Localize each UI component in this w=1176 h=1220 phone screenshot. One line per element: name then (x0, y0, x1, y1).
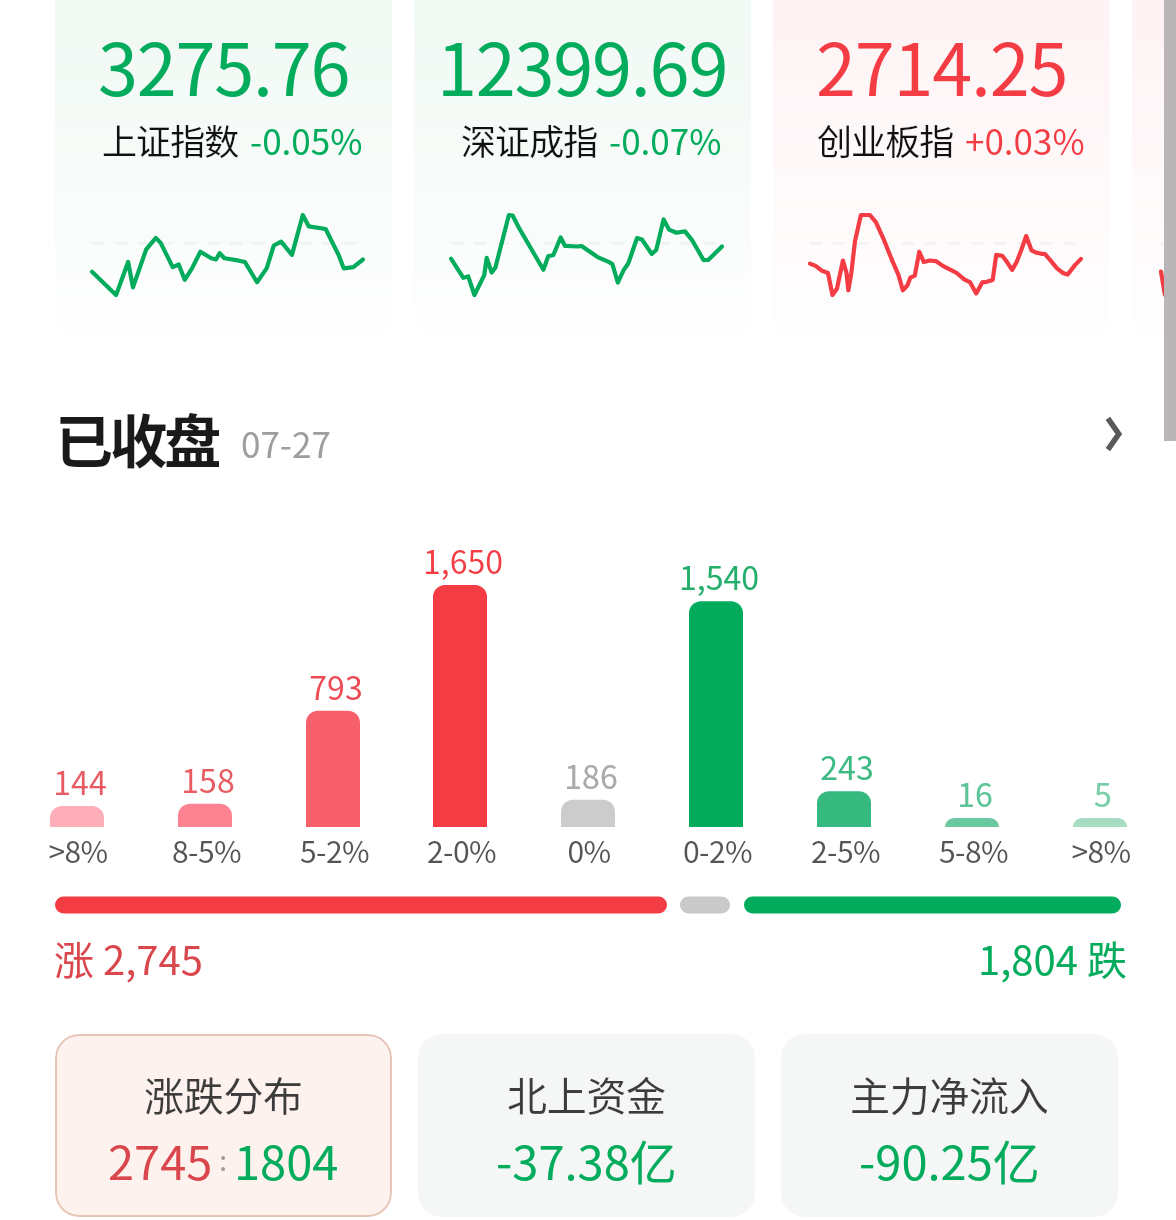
button[interactable]: 北上资金 (418, 1034, 755, 1217)
button[interactable]: 3254.68 (1132, 0, 1176, 336)
staticText: 2-5% (811, 828, 880, 871)
staticText: 5 (1094, 770, 1112, 816)
staticText: 8-5% (172, 828, 241, 871)
button[interactable]: 涨跌分布 (55, 1034, 392, 1217)
button[interactable]: 2714.25 (773, 0, 1110, 336)
staticText: 涨跌分布 (144, 1065, 303, 1123)
staticText: 北上资金 (507, 1065, 666, 1123)
staticText: 0% (567, 828, 611, 871)
staticText: 深证成指 (461, 114, 598, 165)
staticText: 5-8% (939, 828, 1008, 871)
button[interactable]: 12399.69 (414, 0, 751, 336)
staticText: 已收盘 (55, 396, 219, 476)
staticText: 16 (957, 770, 993, 816)
button[interactable] (15, 754, 139, 827)
staticText: -0.07% (609, 114, 722, 165)
staticText: 创业板指 (817, 114, 954, 165)
staticText: 144 (53, 758, 107, 804)
staticText: 793 (309, 663, 363, 709)
staticText: 主力净流入 (850, 1065, 1049, 1123)
staticText: 2745 (108, 1125, 213, 1193)
staticText: -37.38亿 (496, 1125, 677, 1193)
staticText: 0-2% (683, 828, 752, 871)
button[interactable] (526, 748, 650, 827)
staticText: : (213, 1139, 234, 1180)
button[interactable]: 已收盘 (50, 396, 345, 476)
button[interactable] (910, 766, 1034, 827)
staticText: +0.03% (965, 114, 1085, 165)
button[interactable] (1038, 766, 1162, 827)
staticText: 2-0% (427, 828, 496, 871)
staticText: 上证指数 (102, 114, 239, 165)
button[interactable] (398, 533, 522, 827)
staticText: 3275.76 (98, 12, 350, 116)
button[interactable]: 3275.76 (55, 0, 392, 336)
staticText: 1,540 (679, 553, 759, 599)
button[interactable] (271, 659, 395, 827)
staticText: -90.25亿 (859, 1125, 1040, 1193)
button[interactable]: 主力净流入 (781, 1034, 1118, 1217)
staticText: 12399.69 (437, 12, 728, 116)
button[interactable] (654, 549, 778, 827)
staticText: 186 (564, 752, 618, 798)
staticText: -0.05% (250, 114, 363, 165)
button[interactable] (143, 752, 267, 827)
staticText: 1,804 跌 (978, 929, 1127, 987)
staticText: 涨 2,745 (54, 929, 203, 987)
staticText: >8% (1071, 828, 1131, 871)
button[interactable] (782, 739, 906, 827)
staticText: 07-27 (241, 417, 331, 468)
staticText: >8% (48, 828, 108, 871)
staticText: 1804 (234, 1125, 339, 1193)
staticText: 1,650 (423, 537, 503, 583)
staticText: 243 (820, 743, 874, 789)
staticText: 158 (181, 756, 235, 802)
button[interactable]: More (1081, 402, 1145, 466)
staticText: 5-2% (300, 828, 369, 871)
staticText: 2714.25 (816, 12, 1068, 116)
